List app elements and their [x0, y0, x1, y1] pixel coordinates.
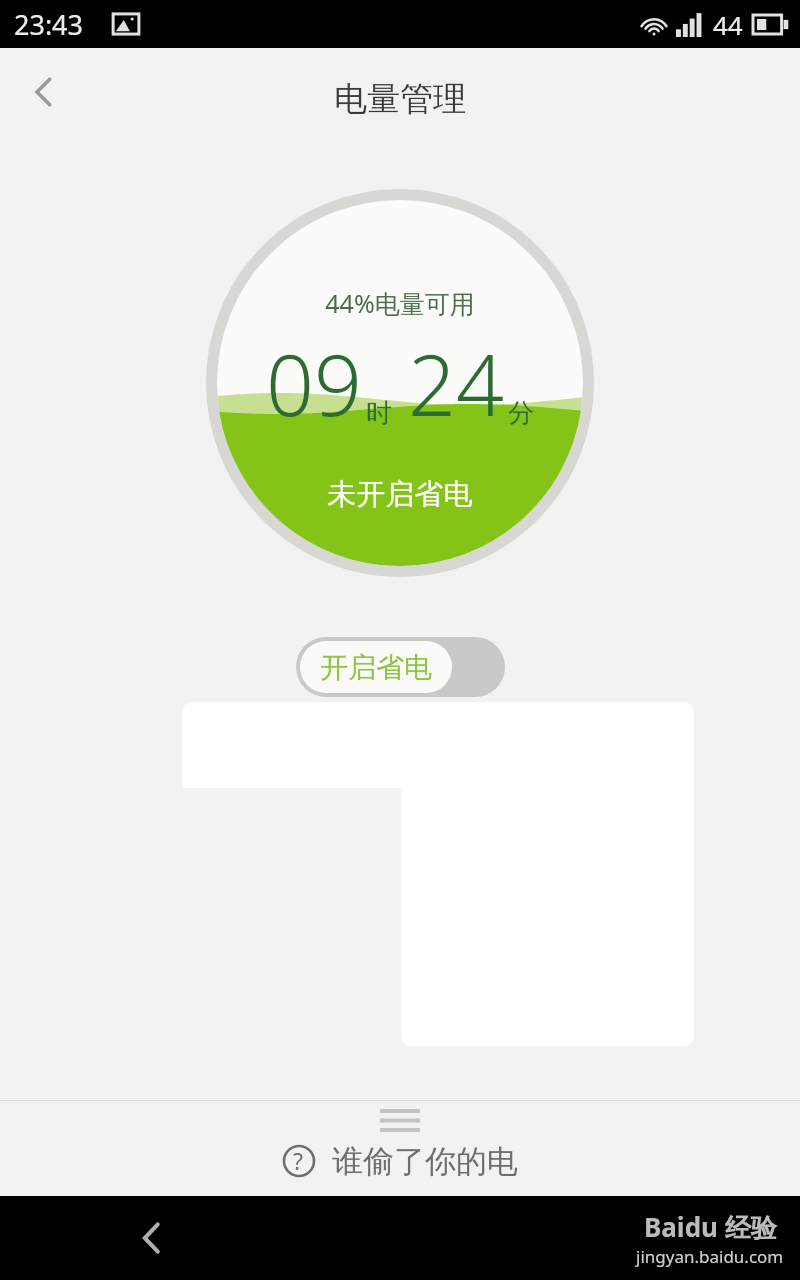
- staticText: 24: [408, 326, 504, 440]
- staticText: jingyan.baidu.com: [636, 1245, 784, 1268]
- staticText: 电量管理: [334, 78, 466, 120]
- button[interactable]: 开启省电: [296, 637, 505, 697]
- staticText: 分: [508, 397, 534, 430]
- staticText: 开启省电: [320, 650, 432, 685]
- staticText: Baidu 经验: [644, 1209, 777, 1245]
- staticText: 44: [713, 7, 743, 42]
- button[interactable]: Back: [0, 48, 88, 136]
- button[interactable]: ?: [0, 1134, 800, 1188]
- staticText: 时: [366, 397, 392, 430]
- staticText: 09: [266, 326, 362, 440]
- staticText: 23:43: [14, 6, 84, 43]
- button[interactable]: Back: [112, 1198, 192, 1278]
- staticText: 未开启省电: [0, 476, 800, 513]
- staticText: ?: [293, 1145, 303, 1176]
- staticText: 44%电量可用: [0, 286, 800, 320]
- staticText: 谁偷了你的电: [332, 1142, 518, 1181]
